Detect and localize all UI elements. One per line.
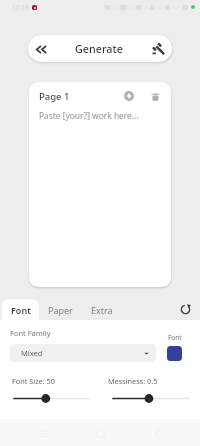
button[interactable]: Magic wand xyxy=(145,35,172,62)
button[interactable] xyxy=(112,393,190,404)
button[interactable]: Font colour xyxy=(167,346,182,361)
staticText: Paper xyxy=(48,304,73,316)
button[interactable]: Delete page xyxy=(148,89,162,103)
staticText: Paste [your?] work here... xyxy=(39,110,139,121)
staticText: Extra xyxy=(91,304,113,316)
staticText: Font xyxy=(168,333,182,342)
button[interactable]: Refresh xyxy=(175,299,196,320)
staticText: Messiness: 0.5 xyxy=(108,376,158,386)
button[interactable]: Mixed xyxy=(10,344,156,362)
button[interactable]: Add page xyxy=(122,89,136,103)
button[interactable]: Paper xyxy=(39,299,81,320)
staticText: 16:16 xyxy=(12,3,29,12)
staticText: Generate xyxy=(75,41,123,56)
staticText: Font Size: 50 xyxy=(12,376,55,386)
staticText: Mixed xyxy=(21,348,43,358)
staticText: Page 1 xyxy=(39,90,70,103)
staticText: Font xyxy=(11,304,31,316)
button[interactable]: Extra xyxy=(81,299,123,320)
button[interactable]: Font xyxy=(2,299,39,320)
button[interactable]: Back xyxy=(28,36,54,62)
button[interactable] xyxy=(13,393,91,404)
staticText: Font Family xyxy=(10,328,51,338)
